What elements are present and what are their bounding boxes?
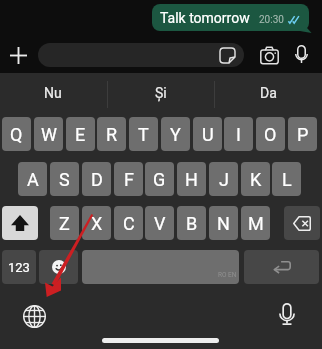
staticText: U xyxy=(202,124,214,145)
button[interactable]: V xyxy=(145,206,174,240)
staticText: Talk tomorrow xyxy=(160,10,250,26)
staticText: Q xyxy=(10,124,23,145)
button[interactable]: I xyxy=(224,117,253,151)
staticText: N xyxy=(217,213,230,234)
button[interactable]: H xyxy=(177,162,206,196)
button[interactable]: E xyxy=(66,117,95,151)
staticText: G xyxy=(153,169,166,190)
staticText: RO EN xyxy=(218,271,237,279)
button[interactable]: U xyxy=(193,117,222,151)
staticText: J xyxy=(219,169,229,190)
button[interactable]: M xyxy=(241,206,270,240)
staticText: K xyxy=(250,169,262,190)
button[interactable]: F xyxy=(114,162,143,196)
button[interactable]: Voice input xyxy=(275,302,299,326)
staticText: Y xyxy=(170,124,181,145)
staticText: A xyxy=(27,169,39,190)
button[interactable]: A xyxy=(18,162,47,196)
staticText: V xyxy=(154,213,166,234)
button[interactable]: D xyxy=(82,162,111,196)
staticText: O xyxy=(264,124,277,145)
button[interactable]: S xyxy=(50,162,79,196)
button[interactable]: Sticker xyxy=(220,48,235,63)
button[interactable]: K xyxy=(241,162,270,196)
button[interactable]: G xyxy=(145,162,174,196)
button[interactable] xyxy=(39,250,78,284)
staticText: M xyxy=(248,213,264,234)
button[interactable]: C xyxy=(114,206,143,240)
button[interactable]: Nu xyxy=(18,77,88,109)
button[interactable]: B xyxy=(177,206,206,240)
button[interactable]: Attach xyxy=(5,42,32,69)
staticText: H xyxy=(185,169,198,190)
staticText: E xyxy=(75,124,86,145)
button[interactable] xyxy=(244,250,319,284)
button[interactable]: RO EN xyxy=(82,250,239,284)
button[interactable]: 123 xyxy=(2,250,36,284)
button[interactable] xyxy=(2,206,38,240)
staticText: D xyxy=(91,169,103,190)
button[interactable] xyxy=(284,206,320,240)
button[interactable]: Camera xyxy=(259,45,280,66)
button[interactable]: Q xyxy=(2,117,31,151)
button[interactable]: T xyxy=(129,117,158,151)
staticText: Și xyxy=(155,85,167,101)
button[interactable]: N xyxy=(209,206,238,240)
button[interactable]: Voice message xyxy=(291,43,312,64)
staticText: I xyxy=(236,124,241,145)
button[interactable]: Y xyxy=(161,117,190,151)
button[interactable]: P xyxy=(288,117,317,151)
staticText: 20:30 xyxy=(259,14,284,26)
button[interactable]: Da xyxy=(233,77,303,109)
staticText: W xyxy=(41,124,57,145)
staticText: B xyxy=(186,213,198,234)
button[interactable]: J xyxy=(209,162,238,196)
staticText: C xyxy=(123,213,135,234)
staticText: P xyxy=(297,124,309,145)
button[interactable]: O xyxy=(256,117,285,151)
button[interactable]: W xyxy=(34,117,63,151)
staticText: S xyxy=(59,169,70,190)
staticText: Nu xyxy=(44,85,62,101)
button[interactable]: L xyxy=(272,162,301,196)
staticText: 123 xyxy=(8,260,30,275)
staticText: R xyxy=(106,124,118,145)
button[interactable]: Z xyxy=(50,206,79,240)
button[interactable]: R xyxy=(97,117,126,151)
staticText: Da xyxy=(260,85,277,101)
staticText: T xyxy=(138,124,149,145)
button[interactable]: Talk tomorrow xyxy=(152,4,309,31)
button[interactable]: Change language xyxy=(22,304,46,328)
staticText: Z xyxy=(59,213,70,234)
staticText: F xyxy=(124,169,134,190)
staticText: X xyxy=(91,213,103,234)
staticText: L xyxy=(282,169,292,190)
button[interactable]: Sticker xyxy=(38,43,244,67)
button[interactable]: Și xyxy=(126,77,196,109)
button[interactable]: X xyxy=(82,206,111,240)
